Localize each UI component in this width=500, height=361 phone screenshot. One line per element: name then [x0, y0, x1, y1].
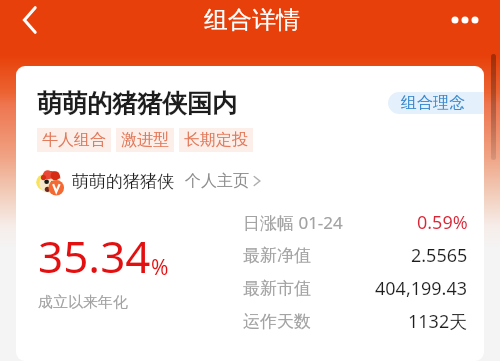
staticText: 萌萌的猪猪侠 — [72, 171, 174, 192]
staticText: 最新市值 — [243, 278, 311, 299]
staticText: 404,199.43 — [375, 276, 468, 301]
staticText: 运作天数 — [243, 311, 311, 332]
button[interactable]: 长期定投 — [179, 128, 253, 152]
staticText: 长期定投 — [184, 130, 248, 150]
staticText: 0.59% — [417, 210, 468, 235]
staticText: 1132天 — [408, 309, 468, 334]
staticText: 日涨幅 01-24 — [243, 211, 343, 234]
button[interactable]: 萌萌的猪猪侠 — [37, 168, 261, 194]
staticText: 个人主页 — [185, 171, 249, 191]
button[interactable]: More options — [444, 0, 486, 40]
button[interactable]: Back — [9, 0, 49, 40]
button[interactable]: 牛人组合 — [37, 128, 111, 152]
button[interactable]: 激进型 — [116, 128, 174, 152]
staticText: 组合详情 — [204, 5, 300, 35]
staticText: 成立以来年化 — [38, 293, 128, 312]
button[interactable]: 组合理念 — [388, 92, 484, 114]
staticText: 萌萌的猪猪侠国内 — [37, 88, 237, 119]
staticText: 35.34 — [38, 226, 151, 286]
staticText: 牛人组合 — [42, 130, 106, 150]
staticText: 激进型 — [121, 130, 169, 150]
staticText: 最新净值 — [243, 245, 311, 266]
staticText: % — [151, 253, 169, 282]
staticText: 2.5565 — [411, 243, 468, 268]
staticText: 组合理念 — [401, 93, 465, 113]
